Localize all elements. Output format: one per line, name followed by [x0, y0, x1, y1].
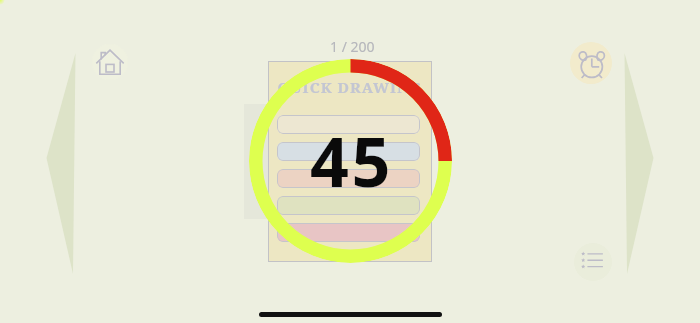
button[interactable]: Leaderboard: [574, 243, 612, 281]
button[interactable]: Alarm: [570, 42, 612, 84]
button[interactable]: Start quick drawing timer: [249, 59, 452, 263]
staticText: QUICK DRAWING: [268, 77, 432, 97]
staticText: 45: [310, 114, 393, 207]
staticText: 1 / 200: [330, 37, 375, 56]
button[interactable]: Home: [92, 44, 128, 80]
